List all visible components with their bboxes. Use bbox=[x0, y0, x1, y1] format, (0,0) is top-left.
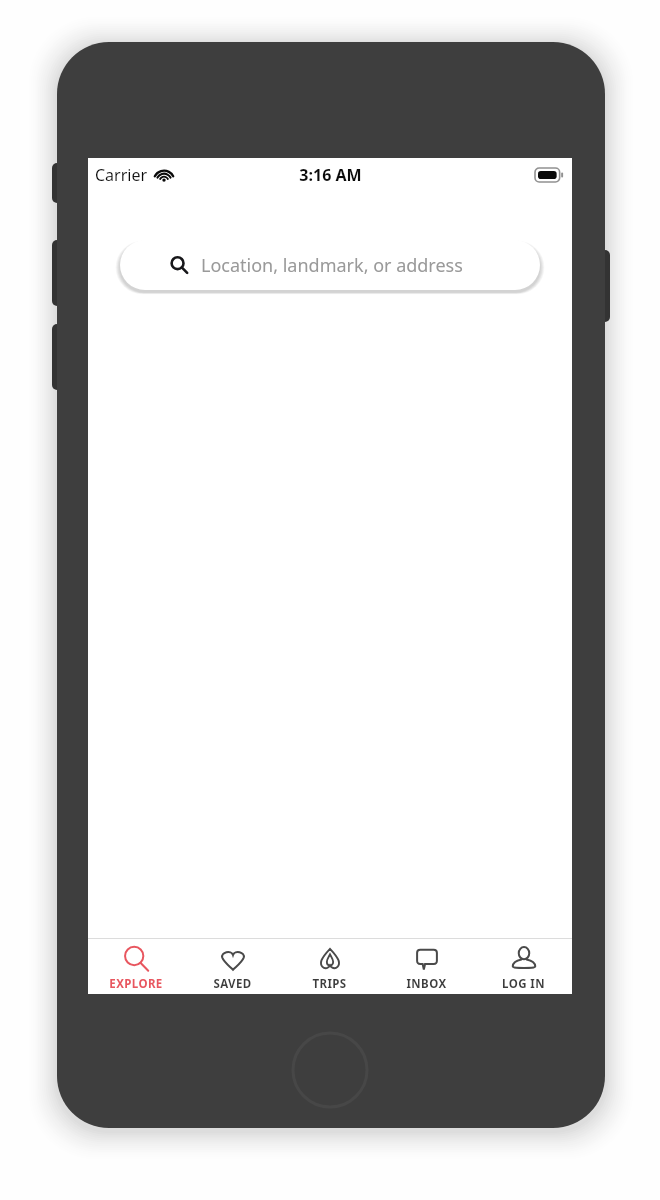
button[interactable]: INBOX bbox=[378, 939, 475, 994]
button[interactable]: SAVED bbox=[184, 939, 281, 994]
button[interactable]: EXPLORE bbox=[88, 939, 184, 994]
staticText: LOG IN bbox=[502, 976, 545, 992]
staticText: Carrier bbox=[95, 164, 148, 186]
staticText: EXPLORE bbox=[109, 976, 163, 992]
staticText: Location, landmark, or address bbox=[201, 253, 463, 278]
staticText: 3:16 AM bbox=[299, 164, 362, 186]
button[interactable]: LOG IN bbox=[475, 939, 572, 994]
staticText: TRIPS bbox=[312, 976, 347, 992]
button[interactable]: TRIPS bbox=[281, 939, 378, 994]
staticText: SAVED bbox=[213, 976, 252, 992]
staticText: INBOX bbox=[406, 976, 447, 992]
button[interactable]: Location, landmark, or address bbox=[120, 240, 540, 290]
